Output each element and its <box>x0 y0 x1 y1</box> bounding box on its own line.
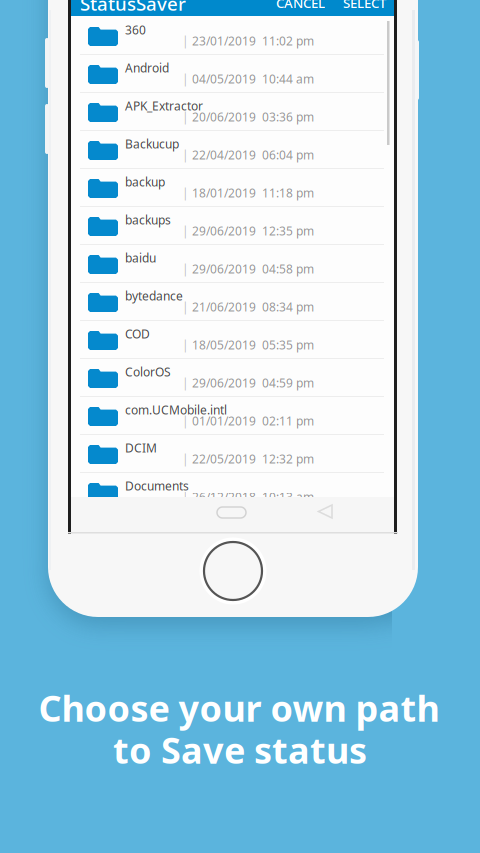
staticText: com.UCMobile.intl <box>125 402 227 418</box>
staticText: 20/06/2019 03:36 pm <box>189 109 314 125</box>
staticText: 01/01/2019 02:11 pm <box>189 413 314 429</box>
staticText: | <box>182 109 189 125</box>
button[interactable]: Backucup <box>71 131 394 169</box>
staticText: 360 <box>125 22 146 38</box>
button[interactable]: bytedance <box>71 283 394 321</box>
button[interactable]: DCIM <box>71 435 394 473</box>
staticText: 29/06/2019 04:59 pm <box>189 375 314 391</box>
staticText: | <box>182 223 189 239</box>
staticText: APK_Extractor <box>125 98 203 114</box>
staticText: | <box>182 147 189 163</box>
staticText: | <box>182 375 189 391</box>
staticText: | <box>182 33 189 49</box>
staticText: CANCEL <box>276 0 325 12</box>
button[interactable]: SELECT <box>343 0 386 12</box>
staticText: 21/06/2019 08:34 pm <box>189 299 314 315</box>
staticText: | <box>182 299 189 315</box>
button[interactable]: Documents <box>71 473 394 511</box>
staticText: 26/12/2018 10:13 am <box>189 489 314 505</box>
staticText: bytedance <box>125 288 183 304</box>
button[interactable]: CANCEL <box>276 0 325 12</box>
staticText: Backucup <box>125 136 179 152</box>
staticText: 29/06/2019 12:35 pm <box>189 223 314 239</box>
button[interactable]: StatusSaver <box>80 0 186 16</box>
staticText: 22/05/2019 12:32 pm <box>189 451 314 467</box>
button[interactable]: APK_Extractor <box>71 93 394 131</box>
button[interactable]: COD <box>71 321 394 359</box>
staticText: 30/06/2019 09:21 am <box>189 527 314 543</box>
staticText: | <box>182 71 189 87</box>
staticText: 29/06/2019 04:58 pm <box>189 261 314 277</box>
staticText: 18/01/2019 11:18 pm <box>189 185 314 201</box>
button[interactable]: baidu <box>71 245 394 283</box>
staticText: 22/04/2019 06:04 pm <box>189 147 314 163</box>
staticText: baidu <box>125 250 156 266</box>
button[interactable]: com.UCMobile.intl <box>71 397 394 435</box>
staticText: DCIM <box>125 440 157 456</box>
button[interactable]: 360 <box>71 17 394 55</box>
staticText: | <box>182 261 189 277</box>
button[interactable]: Download <box>71 511 394 549</box>
staticText: COD <box>125 326 150 342</box>
button[interactable]: Home <box>217 507 246 518</box>
staticText: | <box>182 185 189 201</box>
staticText: backup <box>125 174 165 190</box>
staticText: | <box>182 451 189 467</box>
staticText: 18/05/2019 05:35 pm <box>189 337 314 353</box>
button[interactable]: Android <box>71 55 394 93</box>
staticText: | <box>182 527 189 543</box>
staticText: | <box>182 489 189 505</box>
staticText: SELECT <box>343 0 386 12</box>
button[interactable]: backups <box>71 207 394 245</box>
staticText: | <box>182 413 189 429</box>
staticText: ColorOS <box>125 364 171 380</box>
staticText: Android <box>125 60 169 76</box>
staticText: 04/05/2019 10:44 am <box>189 71 314 87</box>
button[interactable]: Back <box>317 504 334 520</box>
staticText: StatusSaver <box>80 0 186 16</box>
staticText: Choose your own path <box>38 684 439 732</box>
staticText: backups <box>125 212 171 228</box>
staticText: to Save status <box>113 726 367 774</box>
button[interactable]: ColorOS <box>71 359 394 397</box>
button[interactable]: backup <box>71 169 394 207</box>
staticText: | <box>182 337 189 353</box>
staticText: 23/01/2019 11:02 pm <box>189 33 314 49</box>
staticText: Documents <box>125 478 189 494</box>
